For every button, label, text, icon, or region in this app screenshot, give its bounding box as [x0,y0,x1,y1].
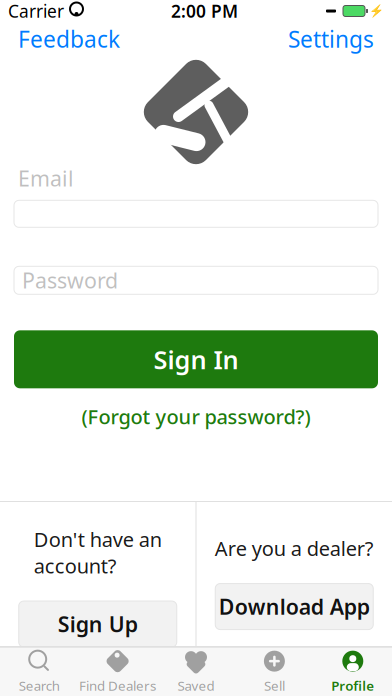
button[interactable]: Sign In [14,330,378,388]
button[interactable]: Profile [314,647,392,696]
staticText: 2:00 PM [171,0,238,22]
staticText: Download App [219,592,370,621]
button[interactable]: Sell [235,647,314,696]
staticText: Email [18,164,74,192]
staticText: ⚡ [369,4,384,18]
button[interactable]: Find Dealers [78,647,157,696]
staticText: Are you a dealer? [215,535,374,562]
staticText: Saved [177,677,214,694]
staticText: Search [19,677,60,694]
staticText: Sell [264,677,285,694]
staticText: Find Dealers [79,677,156,694]
staticText: Don't have an account? [34,526,162,579]
button[interactable]: Search [0,647,78,696]
button[interactable]: Feedback [14,18,124,60]
staticText: Sign Up [58,610,138,638]
staticText: Profile [331,677,374,694]
staticText: Password [22,266,118,294]
button[interactable]: Saved [157,647,235,696]
button[interactable]: Sign Up [19,601,177,647]
button[interactable]: (Forgot your password?) [14,395,378,438]
button[interactable]: Settings [284,18,378,60]
staticText: Sign In [153,342,238,376]
staticText: (Forgot your password?) [81,403,310,430]
staticText: Settings [288,24,374,54]
staticText: Feedback [18,24,120,54]
staticText: Carrier [8,0,64,22]
button[interactable]: Download App [215,584,373,630]
